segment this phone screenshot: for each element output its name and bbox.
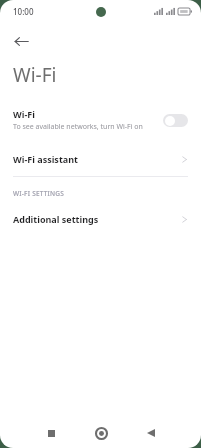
button[interactable]: Home (88, 420, 114, 446)
staticText: Wi-Fi assistant (13, 153, 181, 165)
button[interactable]: Wi-Fi assistant (0, 148, 201, 170)
staticText: Additional settings (13, 213, 181, 225)
staticText: To see available networks, turn Wi-Fi on (13, 122, 143, 132)
button[interactable]: Wi-Fi (0, 104, 201, 136)
staticText: 10:00 (13, 6, 34, 17)
button[interactable]: Recents (38, 420, 64, 446)
staticText: WI-FI SETTINGS (13, 189, 65, 198)
staticText: Wi-Fi (13, 108, 35, 120)
button[interactable]: Back (4, 24, 38, 58)
staticText: Wi-Fi (13, 62, 57, 88)
button[interactable]: Wi-Fi toggle (163, 114, 188, 127)
button[interactable]: Additional settings (0, 208, 201, 230)
button[interactable]: Back (138, 420, 164, 446)
